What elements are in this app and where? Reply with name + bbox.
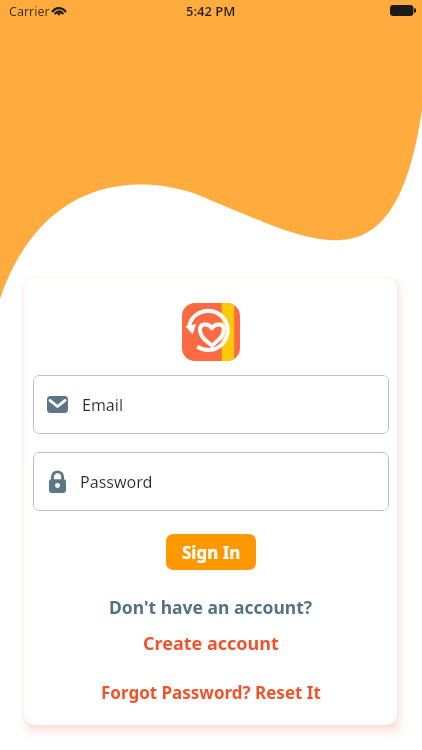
- staticText: Email: [82, 394, 124, 416]
- button[interactable]: Forgot Password? Reset It: [24, 678, 397, 706]
- staticText: 5:42 PM: [186, 2, 236, 20]
- staticText: Create account: [143, 631, 279, 656]
- button[interactable]: Password: [33, 452, 389, 511]
- staticText: Forgot Password? Reset It: [101, 681, 321, 704]
- button[interactable]: Email: [33, 375, 389, 434]
- staticText: Carrier: [9, 3, 50, 20]
- staticText: Sign In: [182, 541, 241, 564]
- staticText: Password: [80, 471, 153, 493]
- button[interactable]: Create account: [24, 629, 397, 657]
- button[interactable]: Don't have an account?: [24, 593, 397, 621]
- button[interactable]: Sign In: [166, 534, 256, 570]
- staticText: Don't have an account?: [109, 595, 313, 619]
